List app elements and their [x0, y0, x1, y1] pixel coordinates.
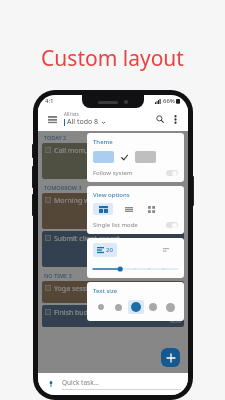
button[interactable]: List view [123, 203, 135, 215]
staticText: 4:1 [45, 97, 54, 105]
button[interactable]: Search [152, 111, 168, 127]
button[interactable]: Toggle task [45, 197, 51, 203]
staticText: Call mom, Clean kitchen [54, 146, 134, 156]
button[interactable]: Card view [93, 203, 113, 215]
button[interactable]: Toggle task [42, 231, 184, 267]
button[interactable]: 20 [93, 243, 117, 257]
staticText: Submit client report [54, 234, 120, 244]
staticText: All lists [64, 111, 79, 117]
staticText: Custom layout [0, 44, 225, 73]
staticText: 01:00 PM [157, 244, 181, 251]
staticText: TOMORROW 3 [44, 184, 82, 191]
button[interactable]: Add task [161, 348, 180, 367]
staticText: Single list mode [93, 221, 138, 229]
button[interactable]: Grid view [145, 203, 157, 215]
staticText: Quick task... [62, 378, 99, 387]
staticText: Yoga session, Drink 2L water [54, 284, 148, 294]
staticText: In 14 hr [54, 213, 181, 220]
button[interactable]: Text size option [110, 300, 126, 314]
button[interactable]: Text size option [162, 300, 178, 314]
staticText: 20 [106, 246, 113, 254]
staticText: In 2 hr [54, 163, 181, 170]
button[interactable]: Light theme [93, 151, 114, 163]
staticText: Fitness [54, 294, 181, 300]
staticText: TODAY 2 [44, 134, 67, 141]
button[interactable]: Value slider [93, 265, 178, 273]
button[interactable]: Toggle task [42, 305, 184, 327]
staticText: View options [93, 191, 130, 199]
button[interactable]: Compact [160, 244, 172, 256]
staticText: Quick task... [62, 378, 99, 387]
button[interactable]: Toggle task [42, 143, 184, 179]
staticText: Work [54, 318, 181, 324]
button[interactable]: More options [168, 112, 182, 126]
button[interactable]: Follow system [93, 169, 178, 177]
staticText: 66% [163, 97, 175, 105]
button[interactable]: Toggle task [45, 309, 51, 315]
button[interactable]: Text size option [128, 300, 144, 314]
staticText: Morning workout [54, 196, 112, 206]
staticText: Finish budget sheet, Email Sarah [54, 308, 161, 318]
staticText: NO TIME 3 [44, 272, 72, 279]
button[interactable]: Toggle task [45, 285, 51, 291]
button[interactable]: Menu [44, 111, 60, 127]
button[interactable]: Toggle task [42, 281, 184, 303]
button[interactable]: Voice input [45, 378, 57, 390]
button[interactable]: Dark theme [135, 151, 156, 163]
staticText: In 20 hr [54, 251, 181, 258]
staticText: Follow system [93, 169, 133, 177]
staticText: All todo 8 [67, 117, 99, 127]
staticText: Text size [93, 287, 118, 295]
button[interactable]: Toggle task [45, 147, 51, 153]
staticText: Theme [93, 138, 113, 146]
button[interactable]: Toggle task [42, 193, 184, 229]
button[interactable]: Toggle task [45, 235, 51, 241]
staticText: Fitness [54, 220, 181, 226]
button[interactable]: Voice input [45, 378, 57, 390]
button[interactable]: Text size option [93, 300, 109, 314]
staticText: Work [54, 258, 181, 264]
button[interactable]: Single list mode [93, 221, 178, 229]
button[interactable]: Text size option [145, 300, 161, 314]
staticText: Personal [54, 170, 181, 176]
button[interactable]: All lists [64, 111, 152, 127]
